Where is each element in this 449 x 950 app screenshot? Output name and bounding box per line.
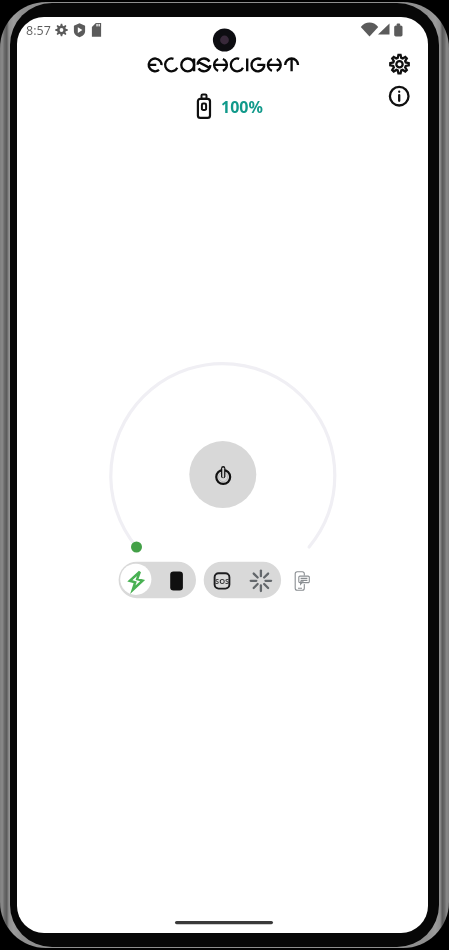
button[interactable]: Settings xyxy=(363,46,399,82)
button[interactable]: Power xyxy=(190,442,256,508)
staticText: 8:57 xyxy=(26,22,51,39)
button[interactable]: Notification flash xyxy=(291,568,315,594)
button[interactable]: Strobe mode xyxy=(242,562,281,599)
staticText: 100% xyxy=(221,96,263,118)
button[interactable]: SOS mode xyxy=(204,562,243,599)
button[interactable]: Information xyxy=(363,78,399,114)
button[interactable]: Flashlight xyxy=(120,564,151,595)
staticText: SOS xyxy=(215,576,230,586)
button[interactable]: Screen light xyxy=(158,562,197,599)
